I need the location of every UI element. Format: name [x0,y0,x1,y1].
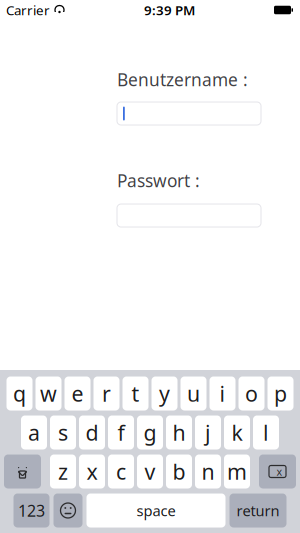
button[interactable]: w [35,376,61,410]
button[interactable]: l [253,415,279,449]
staticText: z [58,457,68,486]
button[interactable]: Emoji keyboard [53,493,82,527]
staticText: x [86,457,97,486]
staticText: d [85,418,98,447]
button[interactable]: n [195,454,221,488]
button[interactable]: return [229,493,286,527]
button[interactable]: Delete [259,454,296,488]
button[interactable]: r [93,376,119,410]
staticText: Carrier [6,1,50,19]
button[interactable]: i [209,376,235,410]
button[interactable]: p [267,376,293,410]
button[interactable] [117,102,261,125]
staticText: 9:39 PM [144,1,195,19]
staticText: m [227,457,247,486]
button[interactable]: t [122,376,148,410]
staticText: w [40,379,57,408]
staticText: q [13,379,26,408]
staticText: x [276,464,282,479]
button[interactable] [117,204,261,227]
staticText: b [172,457,185,486]
staticText: Passwort : [117,169,200,192]
button[interactable]: d [79,415,105,449]
button[interactable]: o [238,376,264,410]
staticText: u [187,379,200,408]
staticText: Benutzername : [117,68,248,91]
staticText: n [201,457,214,486]
button[interactable]: g [137,415,163,449]
button[interactable]: e [64,376,90,410]
staticText: r [102,379,111,408]
button[interactable]: space [86,493,225,527]
staticText: s [58,418,68,447]
staticText: return [236,501,279,520]
staticText: v [144,457,155,486]
button[interactable]: v [137,454,163,488]
staticText: f [117,418,124,447]
button[interactable]: Shift [4,454,41,488]
button[interactable]: k [224,415,250,449]
button[interactable]: h [166,415,192,449]
button[interactable]: m [224,454,250,488]
staticText: k [231,418,242,447]
button[interactable]: z [50,454,76,488]
button[interactable]: f [108,415,134,449]
button[interactable]: 123 [13,493,49,527]
staticText: p [274,379,287,408]
button[interactable]: u [180,376,206,410]
staticText: y [159,379,170,408]
staticText: i [219,379,225,408]
staticText: o [245,379,258,408]
button[interactable]: j [195,415,221,449]
button[interactable]: a [21,415,47,449]
staticText: a [28,418,40,447]
staticText: l [263,418,269,447]
staticText: space [136,501,175,520]
staticText: 123 [18,500,45,521]
button[interactable]: y [151,376,177,410]
button[interactable]: c [108,454,134,488]
staticText: h [172,418,185,447]
staticText: g [143,418,156,447]
button[interactable]: x [79,454,105,488]
staticText: e [71,379,83,408]
button[interactable]: b [166,454,192,488]
staticText: j [205,418,211,447]
button[interactable]: q [6,376,32,410]
button[interactable]: s [50,415,76,449]
staticText: t [131,379,139,408]
staticText: c [116,457,126,486]
